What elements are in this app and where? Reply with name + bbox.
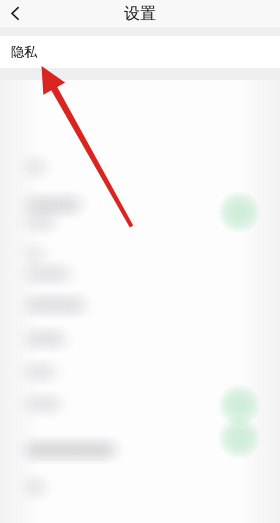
- staticText: 设置: [124, 4, 156, 23]
- staticText: 隐私: [11, 44, 37, 60]
- button[interactable]: Back: [0, 0, 32, 27]
- button[interactable]: 隐私: [0, 36, 280, 68]
